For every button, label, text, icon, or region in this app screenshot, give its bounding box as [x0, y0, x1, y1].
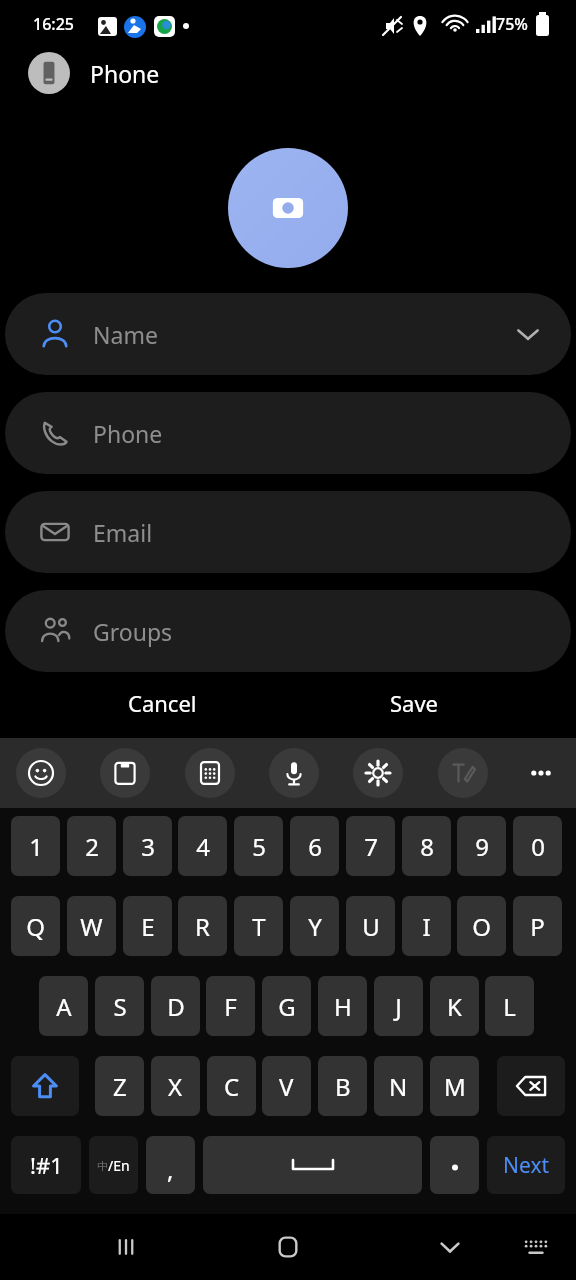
staticText: 1: [29, 830, 43, 863]
staticText: ,: [167, 1153, 174, 1186]
button[interactable]: Keyboard layout: [185, 748, 235, 798]
staticText: A: [56, 990, 72, 1023]
button[interactable]: F: [206, 976, 255, 1036]
staticText: B: [335, 1070, 351, 1103]
button[interactable]: B: [318, 1056, 367, 1116]
button[interactable]: E: [123, 896, 172, 956]
staticText: Name: [93, 319, 158, 350]
staticText: /En: [108, 1156, 130, 1175]
staticText: F: [224, 990, 237, 1023]
staticText: D: [167, 990, 185, 1023]
button[interactable]: I: [402, 896, 451, 956]
button[interactable]: Name: [5, 293, 571, 375]
button[interactable]: O: [457, 896, 506, 956]
staticText: 8: [420, 830, 434, 863]
button[interactable]: H: [318, 976, 367, 1036]
button[interactable]: 5: [234, 816, 283, 876]
button[interactable]: T: [234, 896, 283, 956]
button[interactable]: [430, 1136, 479, 1194]
button[interactable]: 中: [89, 1136, 138, 1194]
staticText: R: [195, 910, 210, 943]
button[interactable]: 7: [346, 816, 395, 876]
staticText: 16:25: [33, 13, 74, 35]
button[interactable]: R: [178, 896, 227, 956]
button[interactable]: Email: [5, 491, 571, 573]
staticText: 0: [531, 830, 545, 863]
button[interactable]: 4: [178, 816, 227, 876]
staticText: Email: [93, 517, 153, 548]
button[interactable]: Add contact photo: [228, 148, 348, 268]
staticText: G: [278, 990, 296, 1023]
staticText: Phone: [90, 58, 160, 89]
button[interactable]: Emoji: [16, 748, 66, 798]
button[interactable]: Settings: [353, 748, 403, 798]
button[interactable]: Z: [95, 1056, 144, 1116]
staticText: Phone: [93, 418, 163, 449]
staticText: !#1: [30, 1150, 63, 1180]
button[interactable]: Clipboard: [100, 748, 150, 798]
staticText: W: [80, 910, 103, 943]
button[interactable]: N: [374, 1056, 423, 1116]
button[interactable]: S: [95, 976, 144, 1036]
button[interactable]: Recent apps: [92, 1214, 160, 1280]
staticText: Groups: [93, 616, 173, 647]
staticText: M: [444, 1070, 466, 1103]
staticText: Save: [390, 688, 439, 718]
button[interactable]: 6: [290, 816, 339, 876]
button[interactable]: Handwriting: [438, 748, 488, 798]
button[interactable]: ,: [146, 1136, 195, 1194]
staticText: Y: [308, 910, 322, 943]
button[interactable]: Space: [203, 1136, 422, 1194]
button[interactable]: G: [262, 976, 311, 1036]
button[interactable]: L: [485, 976, 534, 1036]
staticText: Cancel: [128, 688, 197, 718]
staticText: L: [503, 990, 516, 1023]
button[interactable]: Save: [344, 672, 484, 734]
button[interactable]: More options: [516, 748, 566, 798]
button[interactable]: 8: [402, 816, 451, 876]
button[interactable]: V: [262, 1056, 311, 1116]
button[interactable]: Shift: [11, 1056, 79, 1116]
button[interactable]: W: [67, 896, 116, 956]
button[interactable]: 3: [123, 816, 172, 876]
button[interactable]: U: [346, 896, 395, 956]
button[interactable]: C: [207, 1056, 256, 1116]
button[interactable]: Next: [487, 1136, 565, 1194]
button[interactable]: Home: [254, 1214, 322, 1280]
button[interactable]: !#1: [11, 1136, 81, 1194]
staticText: 2: [85, 830, 99, 863]
button[interactable]: D: [151, 976, 200, 1036]
button[interactable]: K: [430, 976, 479, 1036]
button[interactable]: M: [430, 1056, 479, 1116]
staticText: P: [530, 910, 545, 943]
staticText: 4: [196, 830, 210, 863]
staticText: 3: [141, 830, 155, 863]
staticText: S: [113, 990, 127, 1023]
staticText: Z: [113, 1070, 127, 1103]
button[interactable]: 2: [67, 816, 116, 876]
staticText: V: [279, 1070, 294, 1103]
button[interactable]: Cancel: [92, 672, 232, 734]
button[interactable]: 0: [513, 816, 562, 876]
button[interactable]: A: [39, 976, 88, 1036]
button[interactable]: 9: [457, 816, 506, 876]
button[interactable]: Q: [11, 896, 60, 956]
button[interactable]: X: [151, 1056, 200, 1116]
staticText: J: [395, 990, 402, 1023]
button[interactable]: Phone: [5, 392, 571, 474]
staticText: X: [168, 1070, 183, 1103]
button[interactable]: Groups: [5, 590, 571, 672]
staticText: I: [422, 910, 431, 943]
button[interactable]: Hide keyboard: [416, 1214, 484, 1280]
staticText: Q: [26, 910, 45, 943]
button[interactable]: P: [513, 896, 562, 956]
staticText: O: [472, 910, 491, 943]
button[interactable]: Change keyboard: [506, 1214, 566, 1280]
button[interactable]: Y: [290, 896, 339, 956]
button[interactable]: Voice input: [269, 748, 319, 798]
button[interactable]: Backspace: [497, 1056, 565, 1116]
button[interactable]: 1: [11, 816, 60, 876]
staticText: 5: [252, 830, 266, 863]
staticText: Next: [503, 1151, 550, 1180]
button[interactable]: J: [374, 976, 423, 1036]
